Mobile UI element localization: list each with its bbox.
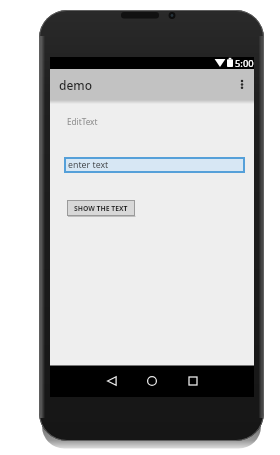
button[interactable] bbox=[100, 369, 124, 393]
staticText: SHOW THE TEXT bbox=[74, 204, 128, 213]
staticText: 5:00 bbox=[235, 57, 254, 70]
staticText: demo bbox=[59, 77, 93, 93]
staticText: EditText bbox=[67, 116, 98, 127]
button[interactable] bbox=[233, 72, 253, 98]
button[interactable] bbox=[140, 369, 164, 393]
button[interactable]: enter text bbox=[64, 157, 245, 173]
button[interactable] bbox=[181, 369, 205, 393]
button[interactable]: SHOW THE TEXT bbox=[67, 200, 135, 216]
staticText: enter text bbox=[68, 159, 109, 171]
